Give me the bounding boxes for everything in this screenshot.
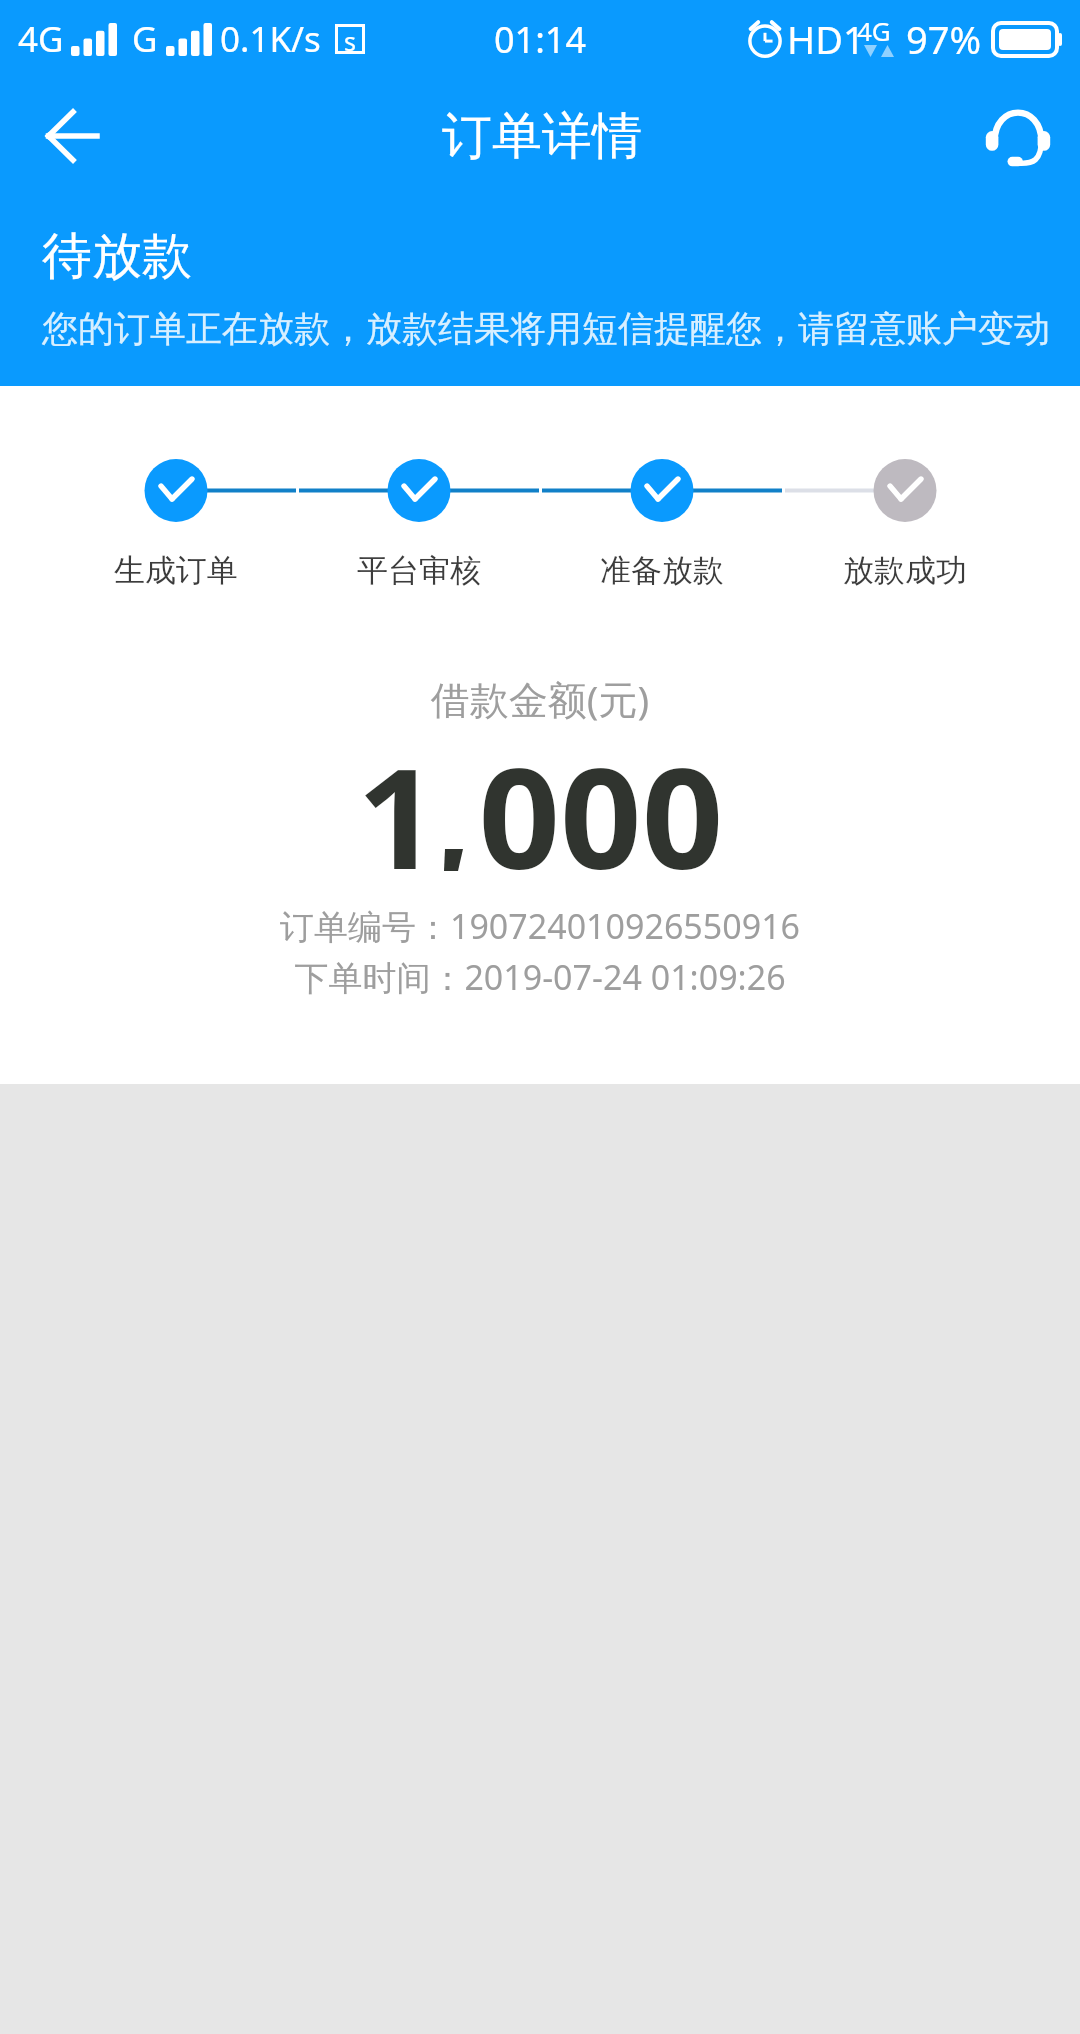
staticText: 准备放款	[600, 551, 724, 590]
staticText: HD1	[787, 13, 865, 65]
staticText: G	[132, 15, 158, 63]
staticText: 1 000	[0, 721, 1080, 909]
staticText: 平台审核	[357, 551, 481, 590]
staticText: 借款金额(元)	[0, 672, 1080, 725]
staticText: 下单时间：2019-07-24 01:09:26	[0, 954, 1080, 1000]
staticText: 放款成功	[843, 551, 967, 590]
staticText: 待放款	[42, 225, 192, 288]
button[interactable]: Customer service	[968, 85, 1068, 185]
staticText: 生成订单	[114, 551, 238, 590]
staticText: s	[344, 24, 356, 54]
staticText: 4G	[18, 15, 64, 63]
staticText: 0.1K/s	[220, 15, 321, 63]
staticText: 4G	[857, 13, 891, 48]
staticText: 97%	[906, 13, 982, 65]
staticText: 订单编号：190724010926550916	[0, 903, 1080, 949]
button[interactable]: Back	[22, 86, 122, 186]
staticText: 订单详情	[442, 105, 642, 168]
staticText: 您的订单正在放款，放款结果将用短信提醒您，请留意账户变动	[42, 306, 1050, 351]
staticText: 01:14	[494, 15, 587, 64]
